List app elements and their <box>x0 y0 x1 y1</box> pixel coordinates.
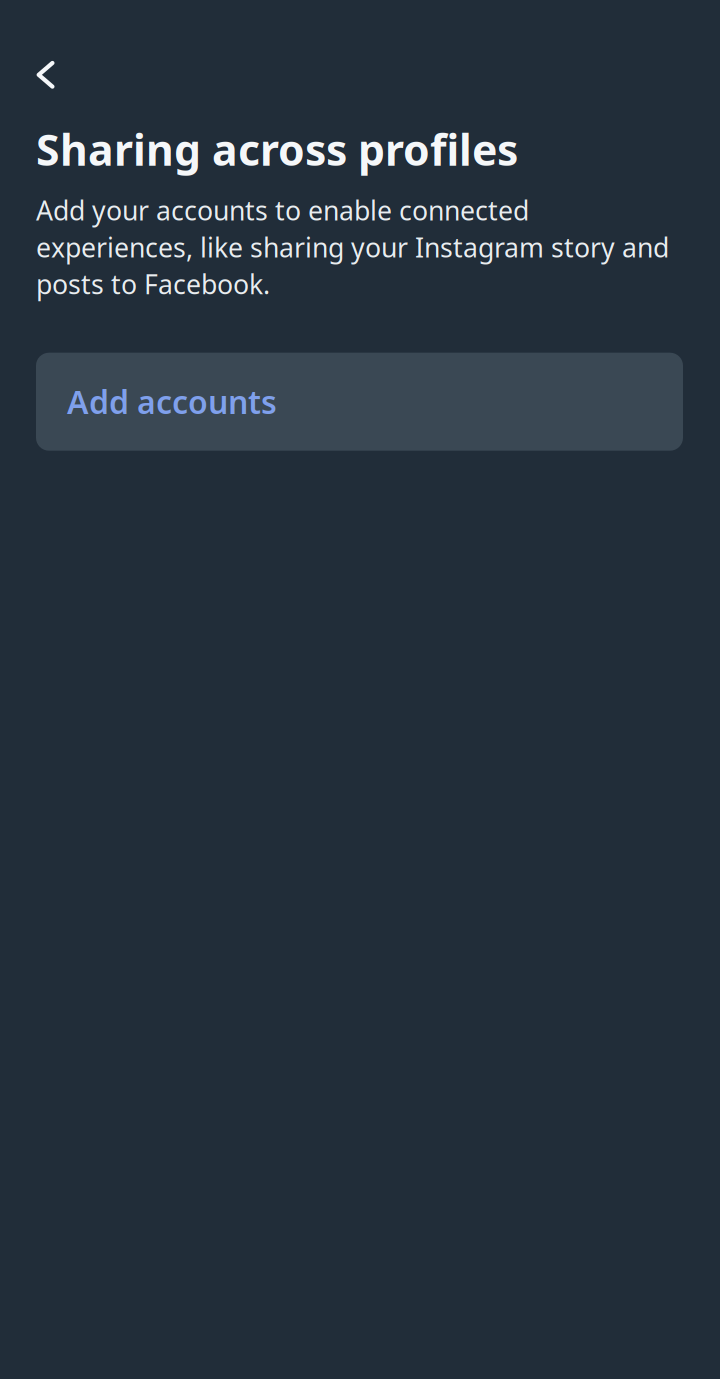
button[interactable]: Add accounts <box>36 353 683 451</box>
button[interactable]: Back <box>0 53 83 97</box>
staticText: Add accounts <box>67 380 277 423</box>
staticText: Sharing across profiles <box>36 121 518 177</box>
staticText: Add your accounts to enable connected ex… <box>36 192 669 302</box>
